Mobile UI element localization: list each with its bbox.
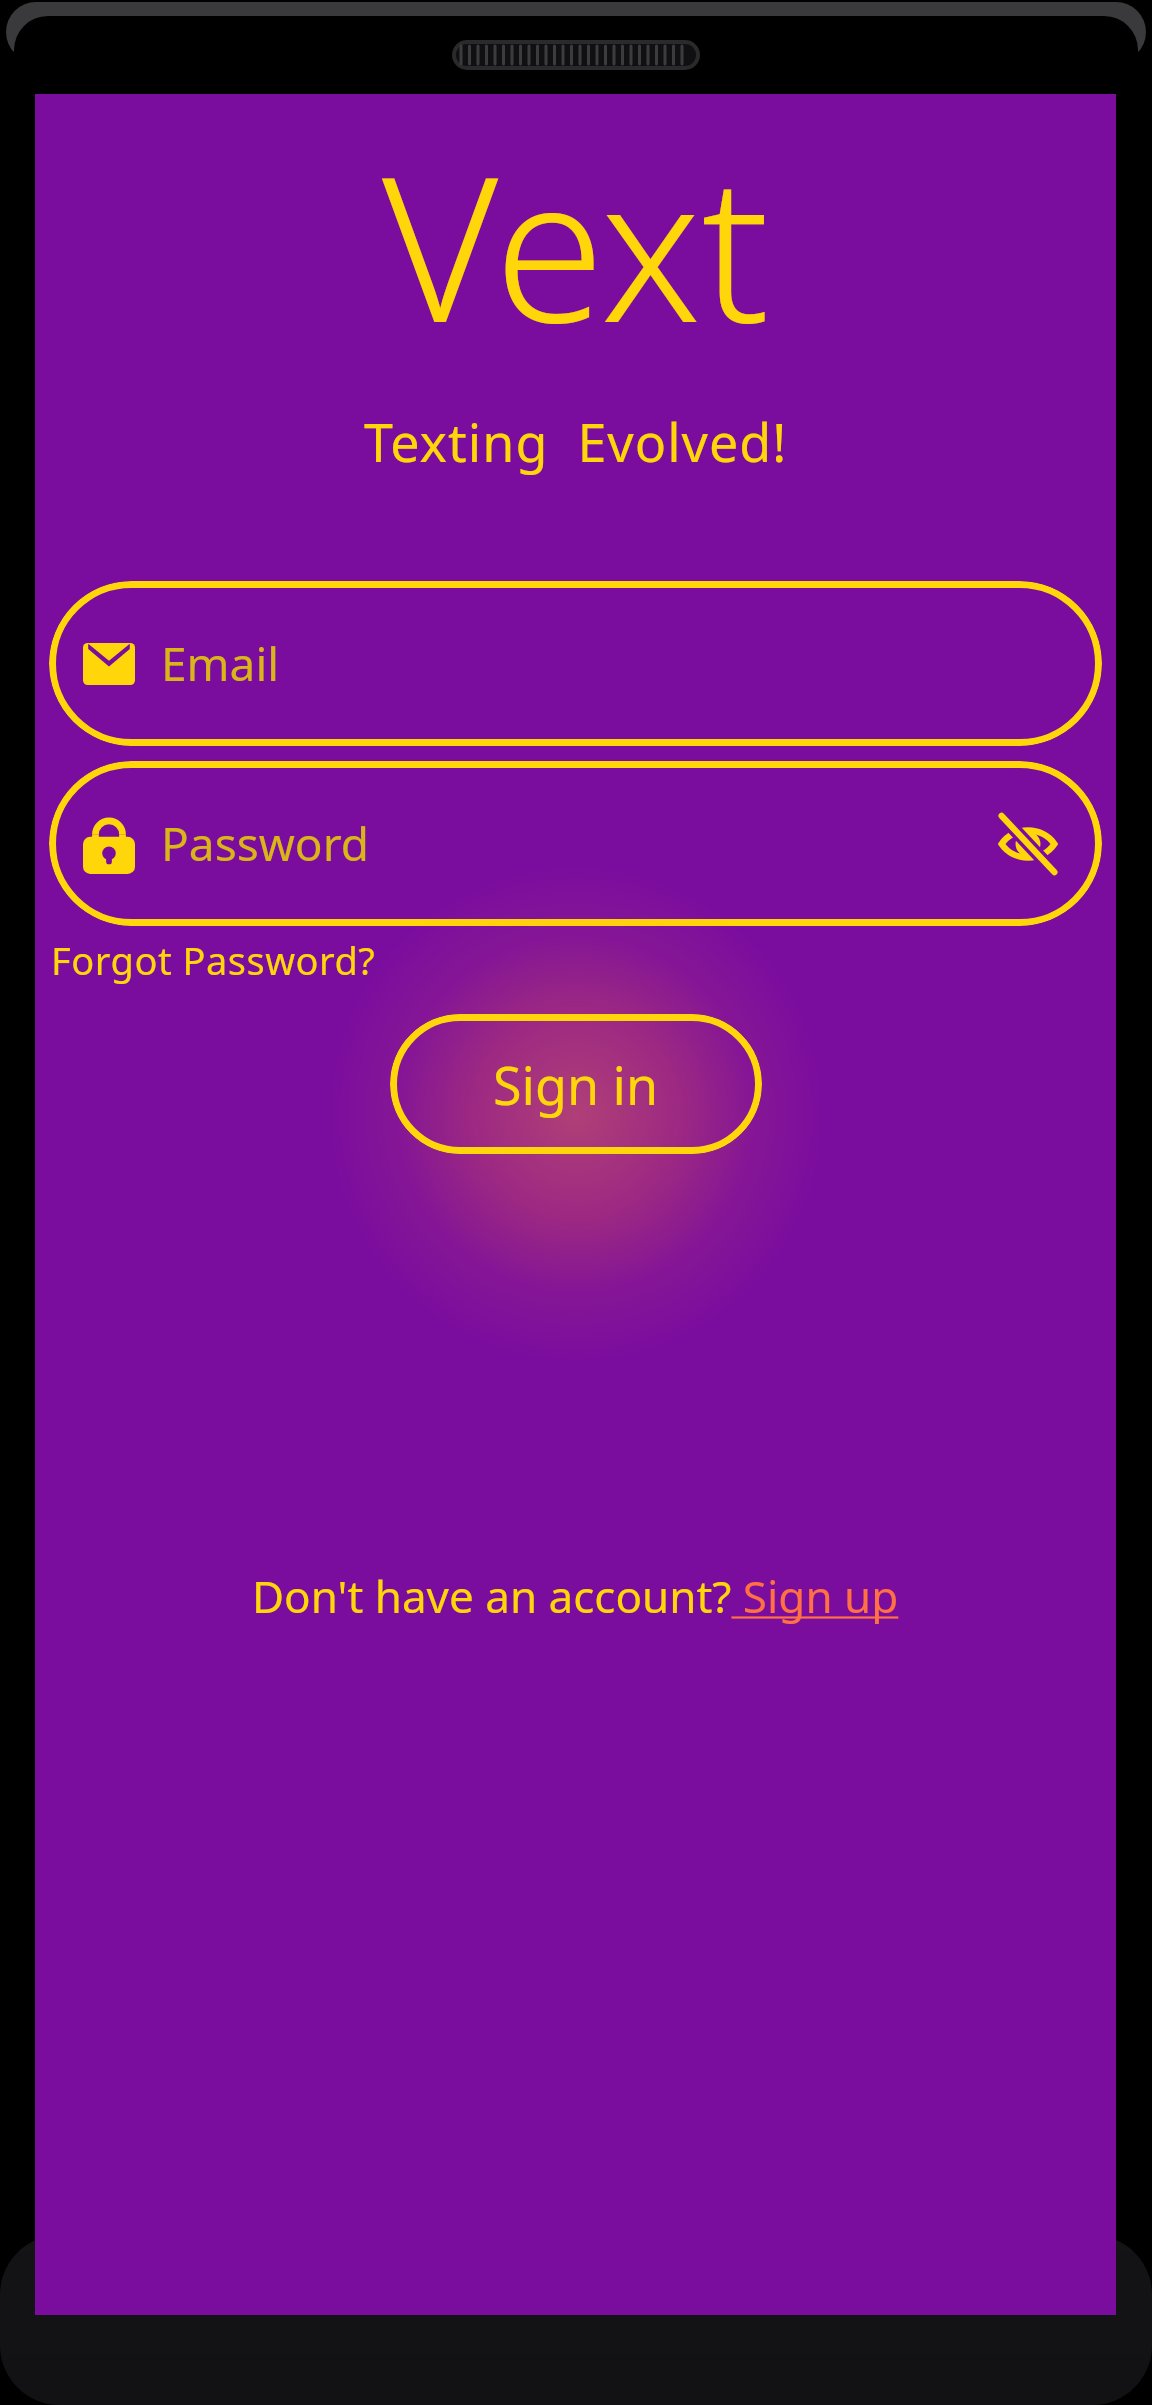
button[interactable]: Password <box>49 761 1102 926</box>
staticText: Don't have an account? Sign up <box>252 1566 899 1626</box>
other: Password <box>83 814 135 874</box>
staticText: Password <box>161 812 370 875</box>
staticText: Sign in <box>493 1049 659 1120</box>
staticText: Vext <box>382 108 770 380</box>
other: Email <box>83 643 135 685</box>
button[interactable]: Forgot Password? <box>51 932 376 988</box>
staticText: Texting Evolved! <box>364 406 788 477</box>
button[interactable]: Sign in <box>390 1014 762 1154</box>
staticText: Email <box>161 632 280 695</box>
staticText: Forgot Password? <box>51 934 376 986</box>
button[interactable]: Email <box>49 581 1102 746</box>
button[interactable]: Show password <box>994 810 1062 878</box>
button[interactable]: Don't have an account? Sign up <box>248 1562 903 1630</box>
